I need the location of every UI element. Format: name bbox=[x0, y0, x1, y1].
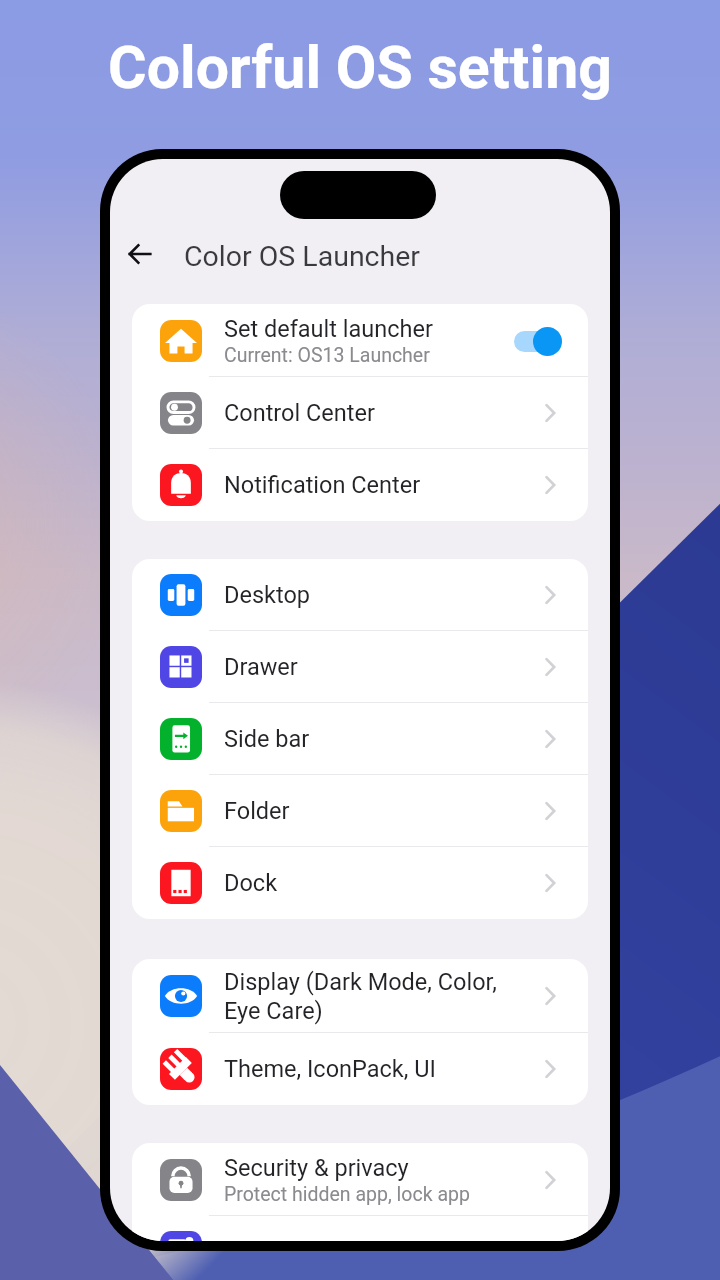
button[interactable]: Back bbox=[116, 230, 164, 278]
staticText: Security & privacy bbox=[224, 1154, 409, 1182]
button[interactable]: Drawer bbox=[132, 631, 588, 703]
button[interactable]: Dock bbox=[132, 847, 588, 919]
button[interactable]: Notification Center bbox=[132, 449, 588, 521]
staticText: Set default launcher bbox=[224, 315, 433, 343]
button[interactable]: Folder bbox=[132, 775, 588, 847]
button[interactable] bbox=[132, 1216, 588, 1241]
staticText: Side bar bbox=[224, 725, 310, 753]
staticText: Protect hidden app, lock app bbox=[224, 1183, 470, 1206]
button[interactable]: Set default launcher bbox=[132, 304, 588, 377]
button[interactable]: Theme, IconPack, UI bbox=[132, 1033, 588, 1105]
staticText: Dock bbox=[224, 869, 278, 897]
button[interactable]: Control Center bbox=[132, 377, 588, 449]
staticText: Folder bbox=[224, 797, 290, 825]
staticText: Current: OS13 Launcher bbox=[224, 344, 430, 367]
button[interactable]: Display (Dark Mode, Color, Eye Care) bbox=[132, 959, 588, 1033]
staticText: Theme, IconPack, UI bbox=[224, 1055, 436, 1083]
staticText: Colorful OS setting bbox=[0, 33, 720, 102]
staticText: Notification Center bbox=[224, 471, 421, 499]
staticText: Desktop bbox=[224, 581, 310, 609]
button[interactable]: Desktop bbox=[132, 559, 588, 631]
staticText: Display (Dark Mode, Color, Eye Care) bbox=[224, 968, 497, 1025]
button[interactable] bbox=[514, 326, 562, 356]
staticText: Control Center bbox=[224, 399, 375, 427]
staticText: Color OS Launcher bbox=[184, 240, 421, 273]
button[interactable]: Security & privacy bbox=[132, 1143, 588, 1216]
button[interactable]: Side bar bbox=[132, 703, 588, 775]
staticText: Drawer bbox=[224, 653, 298, 681]
